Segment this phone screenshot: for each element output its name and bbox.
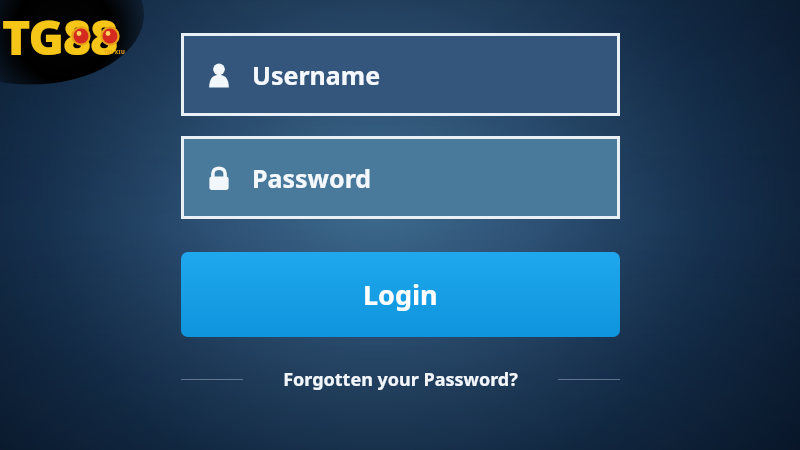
staticText: Username <box>252 58 381 92</box>
button[interactable]: Password <box>184 139 617 216</box>
staticText: Forgotten your Password? <box>255 367 546 392</box>
other: TG88 logo <box>0 0 160 96</box>
staticText: TAI XIU <box>104 49 126 56</box>
staticText: Password <box>252 161 372 195</box>
staticText: TG88 <box>2 4 118 69</box>
button[interactable]: Username <box>184 36 617 113</box>
button[interactable]: Login <box>181 252 620 337</box>
button[interactable]: Forgotten your Password? <box>181 366 620 392</box>
staticText: Login <box>363 276 438 313</box>
